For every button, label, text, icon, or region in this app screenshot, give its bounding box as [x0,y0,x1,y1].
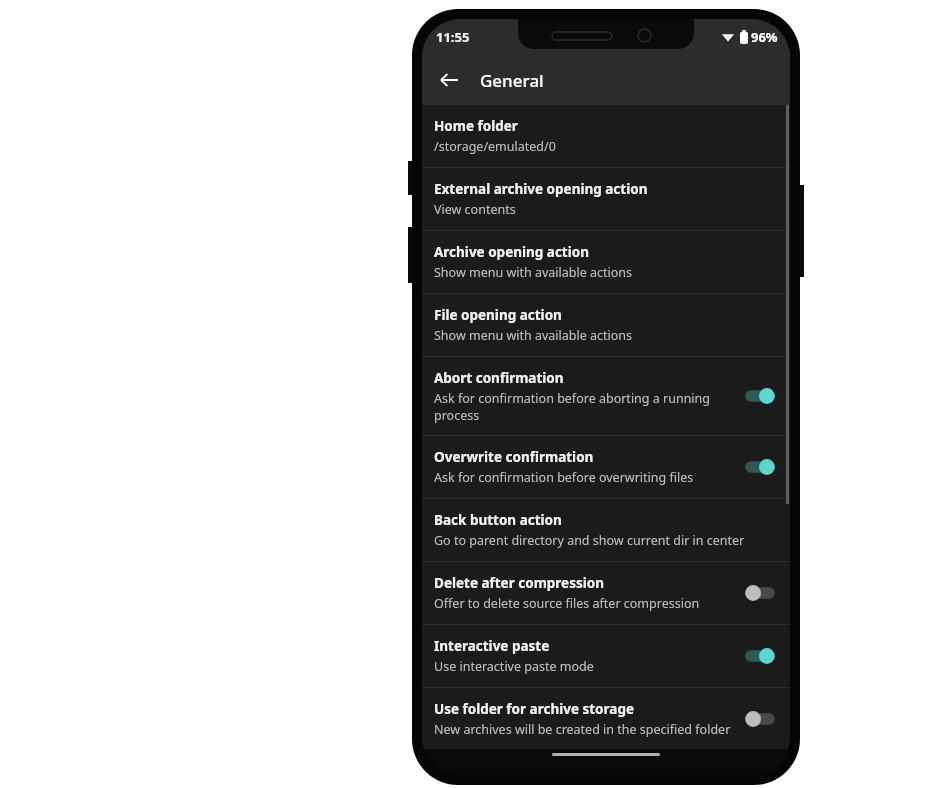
button[interactable]: Home folder [422,105,790,167]
staticText: Interactive paste [434,637,550,655]
button[interactable]: External archive opening action [422,168,790,230]
button[interactable]: Overwrite confirmation [422,436,790,498]
button[interactable]: Toggle on [740,384,780,408]
staticText: /storage/emulated/0 [434,138,556,155]
staticText: Use folder for archive storage [434,700,635,718]
staticText: External archive opening action [434,180,648,198]
staticText: Delete after compression [434,574,604,592]
staticText: Use interactive paste mode [434,658,594,675]
staticText: Ask for confirmation before overwriting … [434,469,694,486]
button[interactable]: Abort confirmation [422,357,790,435]
staticText: Show menu with available actions [434,327,633,344]
button[interactable]: Use folder for archive storage [422,688,790,749]
button[interactable]: Back button action [422,499,790,561]
staticText: Archive opening action [434,243,589,261]
staticText: Abort confirmation [434,369,564,387]
staticText: View contents [434,201,516,218]
staticText: Overwrite confirmation [434,448,594,466]
button[interactable]: Delete after compression [422,562,790,624]
button[interactable]: Toggle on [740,455,780,479]
staticText: 11:55 [436,28,470,46]
staticText: Offer to delete source files after compr… [434,595,700,612]
button[interactable]: Toggle off [740,707,780,731]
staticText: Show menu with available actions [434,264,633,281]
staticText: Go to parent directory and show current … [434,532,745,549]
button[interactable]: Toggle on [740,644,780,668]
staticText: Back button action [434,511,562,529]
staticText: New archives will be created in the spec… [434,721,731,737]
button[interactable]: Interactive paste [422,625,790,687]
button[interactable]: Archive opening action [422,231,790,293]
button[interactable]: File opening action [422,294,790,356]
staticText: File opening action [434,306,562,324]
staticText: Ask for confirmation before aborting a r… [434,390,732,423]
staticText: 96% [751,28,778,46]
staticText: General [480,69,544,92]
button[interactable]: Back [428,59,470,101]
staticText: Home folder [434,117,518,135]
button[interactable]: Toggle off [740,581,780,605]
